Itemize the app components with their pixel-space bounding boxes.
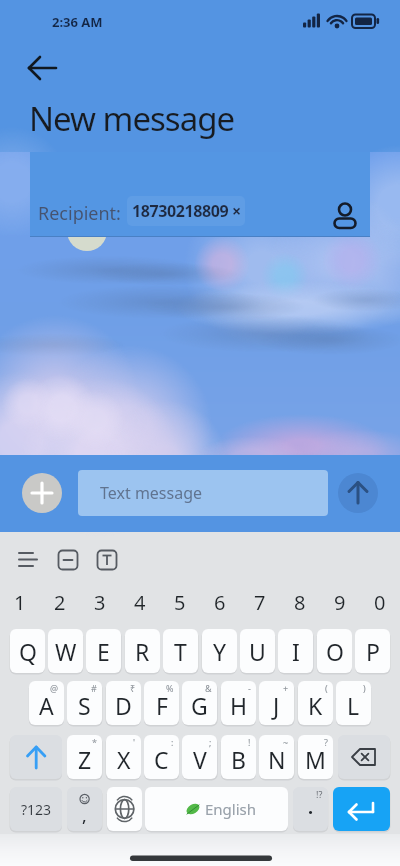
button[interactable]: % [144, 681, 179, 725]
button[interactable]: 4 [120, 580, 160, 624]
staticText: . [308, 795, 314, 820]
button[interactable]: # [67, 681, 102, 725]
button[interactable]: P [355, 629, 390, 673]
button[interactable]: ~ [259, 735, 294, 779]
staticText: Y [213, 636, 227, 667]
staticText: 4 [134, 589, 146, 616]
button[interactable]: ) [336, 681, 371, 725]
button[interactable]: 5 [160, 580, 200, 624]
button[interactable]: 7 [240, 580, 280, 624]
button[interactable]: T [163, 629, 198, 673]
button[interactable]: Text message [78, 470, 328, 516]
staticText: New message [29, 96, 235, 141]
button[interactable]: English [145, 787, 288, 831]
staticText: 9 [334, 589, 346, 616]
button[interactable] [18, 50, 68, 86]
button[interactable] [8, 544, 48, 576]
button[interactable]: ?123 [10, 787, 62, 831]
staticText: @ [50, 682, 59, 694]
staticText: : [171, 736, 174, 748]
button[interactable] [338, 735, 390, 779]
button[interactable]: 3 [80, 580, 120, 624]
button[interactable]: 8 [280, 580, 320, 624]
button[interactable] [48, 544, 88, 576]
button[interactable]: ( [298, 681, 333, 725]
staticText: 1 [14, 589, 26, 616]
button[interactable]: @ [29, 681, 64, 725]
staticText: U [249, 636, 266, 667]
staticText: 8 [294, 589, 306, 616]
staticText: T [174, 636, 187, 667]
staticText: Text message [100, 482, 203, 504]
staticText: ! [248, 736, 251, 748]
staticText: M [305, 744, 326, 775]
button[interactable] [10, 735, 62, 779]
staticText: English [205, 799, 257, 819]
button[interactable] [107, 787, 142, 831]
button[interactable]: * [67, 735, 102, 779]
staticText: ₹ [130, 682, 136, 694]
staticText: - [248, 682, 251, 694]
staticText: Recipient: [38, 201, 121, 226]
button[interactable]: O [317, 629, 352, 673]
staticText: ( [325, 682, 328, 694]
staticText: O [326, 636, 344, 667]
staticText: I [292, 636, 300, 667]
button[interactable]: 9 [320, 580, 360, 624]
staticText: Q [19, 636, 37, 667]
button[interactable]: Q [10, 629, 45, 673]
staticText: ~ [283, 736, 289, 748]
staticText: 3 [94, 589, 106, 616]
button[interactable]: R [125, 629, 160, 673]
button[interactable] [338, 473, 378, 513]
button[interactable]: 6 [200, 580, 240, 624]
button[interactable]: , [67, 787, 102, 831]
button[interactable]: 0 [360, 580, 400, 624]
button[interactable]: ₹ [106, 681, 141, 725]
button[interactable] [22, 473, 62, 513]
staticText: W [55, 636, 77, 667]
staticText: + [283, 682, 289, 694]
staticText: N [268, 744, 286, 775]
staticText: , [82, 804, 87, 827]
button[interactable]: ? [298, 735, 333, 779]
staticText: E [97, 636, 110, 667]
staticText: 18730218809 × [132, 200, 241, 222]
button[interactable]: - [221, 681, 256, 725]
staticText: ' [133, 736, 136, 748]
button[interactable]: ' [106, 735, 141, 779]
staticText: R [135, 636, 150, 667]
staticText: J [273, 690, 280, 721]
button[interactable]: 18730218809 × [127, 196, 245, 226]
staticText: * [92, 736, 97, 748]
button[interactable]: 2 [40, 580, 80, 624]
button[interactable]: & [182, 681, 217, 725]
staticText: 5 [174, 589, 186, 616]
button[interactable]: ; [182, 735, 217, 779]
staticText: F [156, 690, 168, 721]
button[interactable]: + [259, 681, 294, 725]
button[interactable] [333, 787, 390, 831]
button[interactable]: Y [202, 629, 237, 673]
staticText: C [154, 744, 169, 775]
button[interactable]: W [48, 629, 83, 673]
staticText: & [205, 682, 212, 694]
staticText: # [91, 682, 97, 694]
staticText: P [366, 636, 380, 667]
staticText: K [308, 690, 323, 721]
staticText: D [115, 690, 132, 721]
staticText: L [347, 690, 360, 721]
button[interactable]: ! [221, 735, 256, 779]
button[interactable]: E [86, 629, 121, 673]
button[interactable]: 1 [0, 580, 40, 624]
button[interactable]: : [144, 735, 179, 779]
staticText: B [231, 744, 246, 775]
staticText: 7 [254, 589, 266, 616]
staticText: 2 [54, 589, 66, 616]
button[interactable] [87, 544, 127, 576]
staticText: A [39, 690, 54, 721]
button[interactable]: !? [293, 787, 328, 831]
button[interactable]: U [240, 629, 275, 673]
button[interactable]: I [278, 629, 313, 673]
button[interactable] [325, 194, 361, 230]
